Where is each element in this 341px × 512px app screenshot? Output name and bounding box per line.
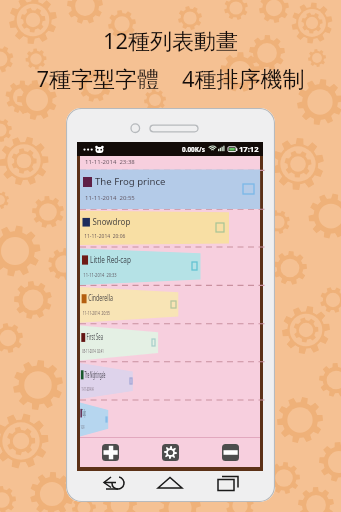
button[interactable]: Cinderella	[80, 287, 260, 323]
staticText: 11-11-2014 20:06	[84, 233, 125, 239]
staticText: Snowdrop	[92, 216, 130, 227]
button[interactable]: Remove	[222, 444, 239, 461]
button[interactable]: Snowdrop	[80, 211, 260, 245]
staticText: 7種字型字體 4種排序機制	[0, 63, 341, 93]
staticText: The Frog prince	[95, 175, 166, 188]
staticText: 0.00K/s	[182, 145, 205, 154]
button[interactable]: Tulip	[80, 402, 260, 436]
staticText: 17:12	[239, 144, 259, 154]
staticText: Cinderella	[88, 292, 113, 304]
button[interactable]: First Sea	[80, 326, 260, 361]
staticText: 11-11-2014 04	[81, 386, 94, 393]
staticText: 11-11-2014 23:38	[85, 158, 135, 166]
button[interactable]: The Nightingale	[80, 363, 260, 399]
staticText: 11-2014	[81, 423, 84, 430]
staticText: 11-11-2014 20:55	[85, 194, 135, 202]
staticText: 12種列表動畫	[0, 25, 341, 55]
button[interactable]: Little Red-cap	[80, 248, 260, 285]
staticText: Tulip	[82, 407, 86, 418]
button[interactable]: The Frog prince	[80, 169, 260, 209]
staticText: The Nightingale	[84, 368, 105, 380]
staticText: First Sea	[86, 331, 103, 343]
staticText: 11-11-2014 20:55	[83, 310, 110, 317]
staticText: 11-11-2014 20:33	[83, 271, 117, 278]
staticText: 05-11-2014 02:41	[82, 348, 104, 355]
button[interactable]: Add	[102, 444, 119, 461]
staticText: Little Red-cap	[90, 253, 131, 265]
button[interactable]: Settings	[162, 444, 179, 461]
